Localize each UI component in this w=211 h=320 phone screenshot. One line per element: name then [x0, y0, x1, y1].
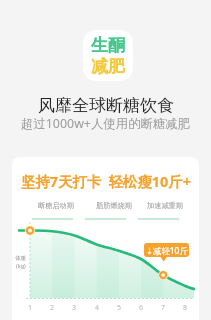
staticText: 体重 — [15, 255, 27, 262]
staticText: ↓减轻10斤 — [146, 245, 188, 256]
staticText: 断糖启动期 — [38, 201, 74, 210]
staticText: 3 — [72, 303, 77, 313]
staticText: 6 — [139, 303, 144, 313]
staticText: 1 — [28, 303, 33, 313]
staticText: 生酮 — [91, 35, 125, 56]
staticText: 坚持7天打卡 轻松瘦10斤+ — [21, 172, 191, 192]
button[interactable]: 生酮减肥 — [83, 30, 133, 81]
button[interactable]: ↓减轻10斤 — [144, 243, 189, 257]
button[interactable]: 加速减重期 — [143, 201, 187, 210]
staticText: 脂肪燃烧期 — [96, 201, 132, 210]
staticText: 4 — [95, 303, 100, 313]
button[interactable]: 断糖启动期 — [34, 201, 78, 210]
staticText: 风靡全球断糖饮食 — [38, 95, 174, 116]
button[interactable]: 脂肪燃烧期 — [92, 201, 136, 210]
staticText: 加速减重期 — [147, 201, 183, 210]
staticText: 7 — [161, 303, 166, 313]
button[interactable]: 坚持7天打卡 轻松瘦10斤+ — [12, 157, 199, 320]
staticText: 减肥 — [91, 56, 125, 77]
staticText: 超过1000w+人使用的断糖减肥 — [21, 115, 191, 132]
staticText: (kg) — [16, 262, 26, 270]
staticText: 2 — [50, 303, 55, 313]
staticText: 8 — [183, 303, 188, 313]
staticText: 5 — [117, 303, 122, 313]
